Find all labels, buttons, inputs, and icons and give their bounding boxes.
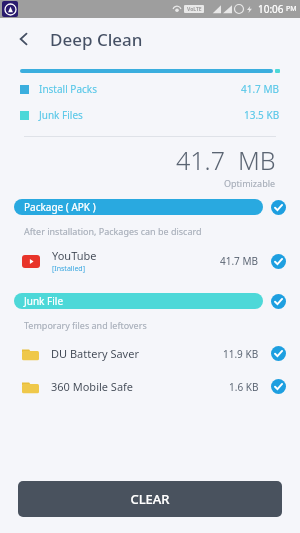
staticText: [Installed]	[52, 264, 85, 274]
staticText: 1.6 KB	[229, 380, 259, 394]
button[interactable]: Toggle Package ( APK ) selection	[271, 200, 286, 215]
staticText: 41.7 MB	[241, 82, 280, 96]
staticText: Package ( APK )	[24, 200, 96, 214]
button[interactable]: 360 Mobile Safe	[0, 370, 300, 403]
staticText: Junk Files	[39, 108, 83, 122]
staticText: After installation, Packages can be disc…	[24, 225, 202, 237]
button[interactable]: YouTube	[0, 243, 300, 279]
button[interactable]: Junk File	[14, 293, 263, 309]
staticText: Optimizable	[224, 177, 276, 189]
staticText: 11.9 KB	[223, 347, 259, 361]
staticText: 41.7 MB	[176, 143, 276, 177]
button[interactable]: Toggle Junk File selection	[271, 294, 286, 309]
staticText: CLEAR	[130, 490, 170, 508]
staticText: Junk File	[24, 294, 64, 308]
button[interactable]: Back	[6, 21, 42, 57]
staticText: 13.5 KB	[244, 108, 280, 122]
staticText: 10:06	[258, 2, 284, 16]
button[interactable]: Toggle YouTube selection	[271, 254, 286, 269]
button[interactable]: CLEAR	[18, 481, 282, 517]
staticText: YouTube	[52, 248, 97, 263]
staticText: DU Battery Saver	[51, 346, 139, 361]
button[interactable]: Toggle DU Battery Saver selection	[271, 346, 286, 361]
staticText: VoLTE	[187, 6, 202, 13]
staticText: 360 Mobile Safe	[51, 379, 134, 394]
staticText: PM	[286, 4, 297, 14]
staticText: Install Packs	[39, 82, 97, 96]
staticText: Temporary files and leftovers	[24, 319, 147, 331]
button[interactable]: Toggle 360 Mobile Safe selection	[271, 379, 286, 394]
staticText: 41.7 MB	[220, 254, 259, 268]
staticText: Deep Clean	[50, 28, 143, 51]
button[interactable]: Package ( APK )	[14, 199, 263, 215]
button[interactable]: DU Battery Saver	[0, 337, 300, 370]
